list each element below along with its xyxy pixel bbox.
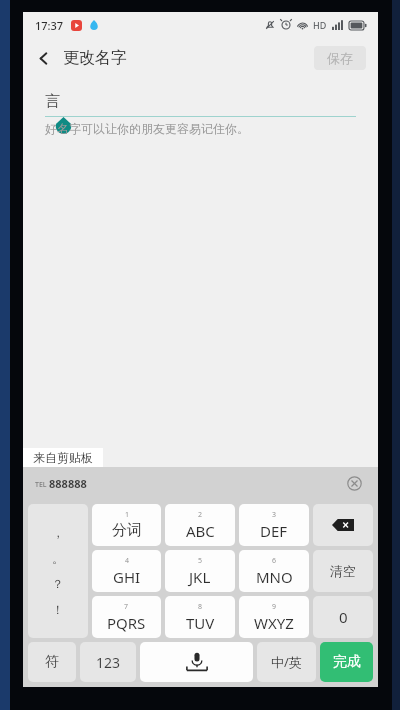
staticText: 。: [52, 551, 64, 566]
button[interactable]: 5: [165, 550, 235, 592]
staticText: 清空: [330, 563, 356, 579]
button[interactable]: 4: [92, 550, 161, 592]
staticText: 4: [125, 556, 130, 566]
staticText: ，: [52, 525, 64, 540]
staticText: 完成: [333, 653, 361, 671]
staticText: ？: [52, 576, 64, 591]
staticText: TUV: [186, 613, 215, 633]
button[interactable]: 符: [28, 642, 76, 682]
button[interactable]: 6: [239, 550, 309, 592]
staticText: 保存: [327, 50, 353, 66]
staticText: 17:37: [35, 18, 64, 33]
staticText: 1: [125, 510, 130, 520]
button[interactable]: 保存: [314, 46, 366, 70]
staticText: 分词: [112, 521, 142, 540]
button[interactable]: 1: [92, 504, 161, 546]
button[interactable]: 3: [239, 504, 309, 546]
staticText: 5: [198, 556, 203, 566]
staticText: GHI: [113, 567, 141, 587]
button[interactable]: 9: [239, 596, 309, 638]
button[interactable]: 清空: [313, 550, 373, 592]
staticText: 符: [45, 653, 59, 671]
staticText: 更改名字: [63, 48, 127, 68]
button[interactable]: 7: [92, 596, 161, 638]
staticText: DEF: [260, 521, 288, 541]
staticText: 言: [45, 92, 60, 111]
button[interactable]: 中/英: [257, 642, 316, 682]
button[interactable]: 来自剪贴板: [23, 448, 103, 467]
staticText: ！: [52, 602, 64, 617]
button[interactable]: TEL: [35, 476, 342, 491]
staticText: 0: [339, 607, 348, 627]
staticText: 好名字可以让你的朋友更容易记住你。: [45, 121, 249, 136]
staticText: 来自剪贴板: [33, 450, 93, 465]
staticText: 9: [272, 602, 277, 612]
staticText: 7: [124, 602, 129, 612]
staticText: 123: [96, 653, 121, 672]
staticText: ABC: [186, 521, 215, 541]
button[interactable]: Back: [23, 38, 63, 78]
staticText: HD: [313, 19, 327, 31]
button[interactable]: ，: [28, 504, 88, 638]
staticText: 2: [198, 510, 203, 520]
staticText: 中/英: [271, 653, 302, 671]
staticText: 6: [272, 556, 277, 566]
button[interactable]: 8: [165, 596, 235, 638]
button[interactable]: 0: [313, 596, 373, 638]
staticText: 8: [198, 602, 203, 612]
button[interactable]: 123: [80, 642, 136, 682]
button[interactable]: Close clipboard: [342, 471, 366, 495]
button[interactable]: Space / Voice input: [140, 642, 253, 682]
button[interactable]: Backspace: [313, 504, 373, 546]
staticText: MNO: [256, 567, 293, 587]
staticText: WXYZ: [254, 613, 294, 633]
button[interactable]: 言: [45, 90, 356, 112]
staticText: TEL: [35, 480, 47, 490]
staticText: 3: [272, 510, 277, 520]
button[interactable]: 2: [165, 504, 235, 546]
button[interactable]: 完成: [320, 642, 373, 682]
staticText: PQRS: [107, 613, 146, 633]
staticText: JKL: [189, 567, 211, 587]
staticText: 888888: [49, 476, 87, 491]
